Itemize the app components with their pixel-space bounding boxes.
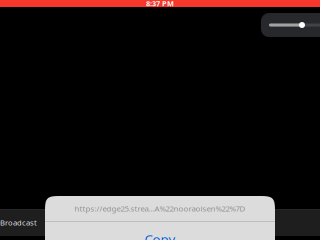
button[interactable]: Copy — [45, 222, 275, 240]
button[interactable]: Volume — [261, 13, 320, 37]
staticText: 8:37 PM — [146, 0, 174, 8]
staticText: Broadcast — [0, 217, 37, 228]
staticText: Copy — [144, 230, 175, 240]
button[interactable]: Broadcast — [0, 209, 44, 236]
staticText: https://edge25.strea…A%22nooraolsen%22%7… — [74, 203, 245, 214]
